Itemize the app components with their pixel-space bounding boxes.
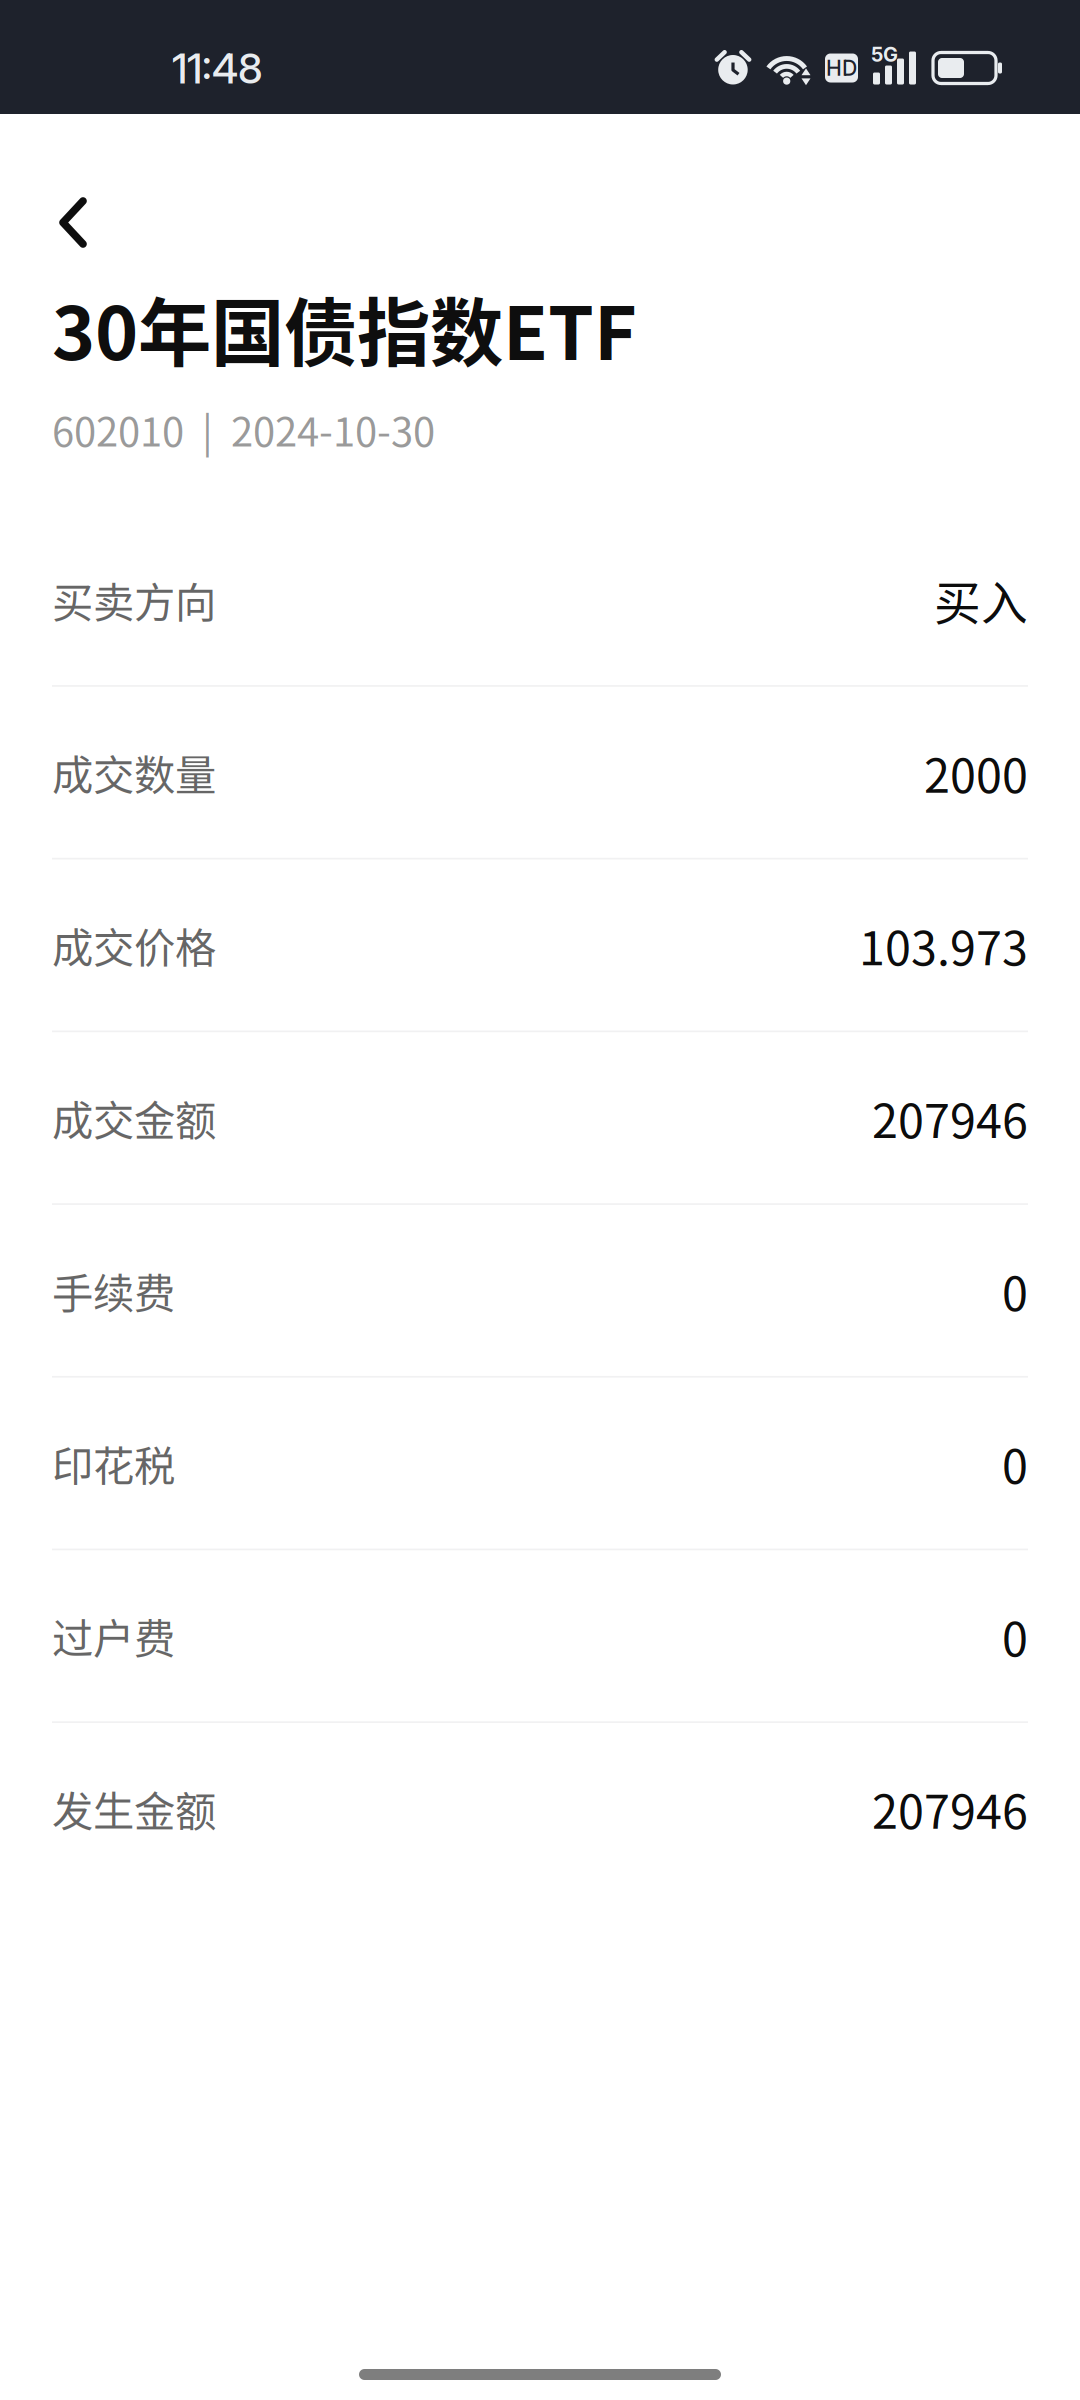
staticText: 成交数量: [52, 742, 216, 802]
staticText: 0: [1002, 1429, 1028, 1497]
staticText: HD: [826, 55, 857, 81]
staticText: 买入: [934, 566, 1028, 633]
staticText: 5G: [871, 42, 898, 66]
staticText: 发生金额: [52, 1779, 216, 1838]
staticText: 过户费: [52, 1606, 175, 1666]
staticText: 买卖方向: [52, 570, 216, 630]
staticText: 成交价格: [52, 915, 216, 975]
staticText: 0: [1002, 1602, 1028, 1670]
staticText: 207946: [872, 1084, 1028, 1151]
staticText: 207946: [872, 1775, 1028, 1842]
staticText: 602010 | 2024-10-30: [52, 400, 435, 458]
staticText: 手续费: [52, 1260, 175, 1320]
staticText: 30年国债指数ETF: [52, 275, 637, 381]
staticText: 103.973: [859, 911, 1028, 979]
staticText: 11:48: [172, 43, 263, 93]
staticText: 成交金额: [52, 1088, 216, 1148]
button[interactable]: Back: [0, 163, 130, 282]
staticText: 2000: [924, 738, 1028, 806]
staticText: 印花税: [52, 1433, 175, 1493]
staticText: 0: [1002, 1257, 1028, 1324]
